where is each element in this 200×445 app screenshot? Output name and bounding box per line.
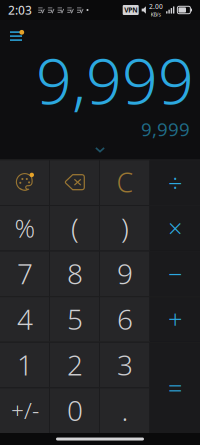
button[interactable]: −	[150, 251, 200, 296]
button[interactable]: ×	[150, 205, 200, 251]
button[interactable]: ÷	[150, 159, 200, 205]
button[interactable]: C	[100, 159, 150, 205]
staticText: (	[71, 209, 79, 246]
staticText: 0	[67, 392, 83, 429]
button[interactable]: 1	[0, 342, 50, 387]
button[interactable]: 2	[50, 342, 100, 387]
staticText: 6	[117, 300, 133, 338]
button[interactable]: 4	[0, 296, 50, 342]
button[interactable]: 9	[100, 251, 150, 296]
button[interactable]: =	[150, 342, 200, 433]
staticText: 1	[17, 346, 33, 383]
staticText: 7	[17, 255, 33, 292]
staticText: 4	[17, 300, 33, 338]
staticText: 2	[67, 346, 83, 383]
button[interactable]	[0, 159, 50, 205]
staticText: 5	[67, 300, 83, 338]
button[interactable]: 3	[100, 342, 150, 387]
button[interactable]	[50, 159, 100, 205]
staticText: KB/s	[151, 11, 162, 18]
staticText: )	[121, 209, 129, 246]
staticText: 9	[117, 255, 133, 292]
button[interactable]: 8	[50, 251, 100, 296]
button[interactable]: 5	[50, 296, 100, 342]
button[interactable]: .	[100, 387, 150, 433]
staticText: C	[116, 164, 133, 200]
button[interactable]: 0	[50, 387, 100, 433]
staticText: +	[168, 302, 182, 336]
staticText: =	[168, 371, 182, 404]
staticText: %	[14, 211, 35, 245]
staticText: .	[121, 392, 128, 429]
button[interactable]: )	[100, 205, 150, 251]
staticText: 8	[67, 255, 83, 292]
button[interactable]: +/-	[0, 387, 50, 433]
staticText: 9,999	[141, 117, 190, 141]
staticText: ×	[168, 211, 182, 245]
staticText: 2:03	[8, 2, 32, 18]
staticText: 2.00	[149, 2, 163, 11]
button[interactable]: 6	[100, 296, 150, 342]
staticText: 9,999	[36, 38, 194, 122]
button[interactable]: 7	[0, 251, 50, 296]
staticText: 3	[117, 346, 133, 383]
button[interactable]: Menu	[0, 20, 32, 44]
button[interactable]: +	[150, 296, 200, 342]
button[interactable]: %	[0, 205, 50, 251]
staticText: +/-	[11, 395, 39, 425]
staticText: −	[168, 257, 182, 290]
button[interactable]: (	[50, 205, 100, 251]
staticText: VPN	[124, 6, 137, 14]
staticText: ÷	[168, 165, 182, 199]
